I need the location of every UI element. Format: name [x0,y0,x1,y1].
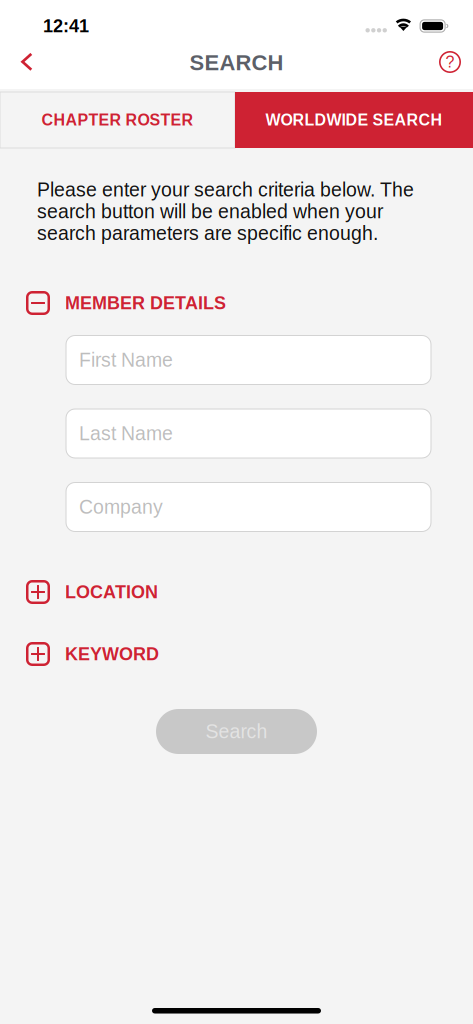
button[interactable]: WORLDWIDE SEARCH [235,92,473,148]
button[interactable]: Search [156,709,317,754]
button[interactable]: CHAPTER ROSTER [0,92,235,148]
button[interactable]: Last Name [66,409,431,458]
button[interactable]: MEMBER DETAILS [0,292,473,314]
staticText: Company [79,496,163,518]
staticText: Please enter your search criteria below.… [37,179,414,244]
button[interactable]: Company [66,482,431,531]
button[interactable]: LOCATION [0,581,473,603]
staticText: Last Name [79,423,173,444]
staticText: First Name [79,349,173,371]
staticText: MEMBER DETAILS [65,293,226,313]
staticText: KEYWORD [65,644,159,664]
staticText: SEARCH [189,50,283,75]
button[interactable]: Help [427,44,473,89]
button[interactable]: KEYWORD [0,643,473,665]
button[interactable]: Back [0,44,54,89]
staticText: 12:41 [43,16,89,36]
button[interactable]: First Name [66,335,431,384]
staticText: LOCATION [65,582,158,602]
staticText: CHAPTER ROSTER [41,111,193,129]
staticText: ? [445,53,454,71]
staticText: Search [205,721,267,742]
staticText: WORLDWIDE SEARCH [265,111,442,129]
